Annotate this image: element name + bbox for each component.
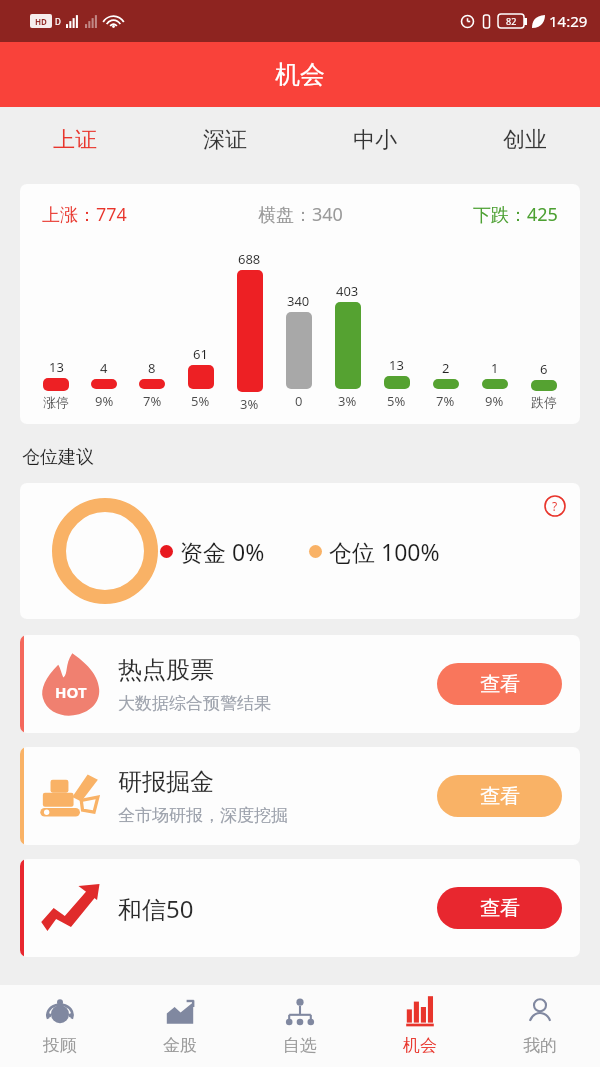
staticText: D [55,16,61,27]
staticText: 查看 [480,896,520,921]
staticText: 3% [240,395,259,410]
staticText: 全市场研报，深度挖掘 [118,805,288,826]
staticText: 13 [49,358,64,376]
staticText: 4 [100,359,108,377]
button[interactable]: 金股 [120,985,240,1067]
staticText: 61 [193,345,208,363]
button[interactable]: 中小 [300,107,450,172]
staticText: 横盘：340 [258,202,343,227]
button[interactable]: 和信50 [20,859,580,957]
staticText: 403 [336,282,359,300]
button[interactable]: 创业 [450,107,600,172]
staticText: 8 [148,359,156,377]
staticText: 340 [287,292,310,310]
button[interactable]: 查看 [437,663,562,705]
button[interactable]: 资金 0% [20,483,580,619]
staticText: 3% [338,392,357,410]
staticText: 查看 [480,784,520,809]
staticText: 创业 [503,126,547,154]
button[interactable]: Help [544,495,566,517]
staticText: 我的 [523,1035,557,1056]
button[interactable]: 自选 [240,985,360,1067]
staticText: 研报掘金 [118,767,214,797]
staticText: 6 [540,360,548,378]
staticText: 中小 [353,126,397,154]
staticText: 82 [506,15,517,27]
staticText: 14:29 [549,11,588,31]
staticText: 9% [95,392,114,410]
staticText: 深证 [203,126,247,154]
staticText: 和信50 [118,892,194,925]
staticText: 跌停 [531,394,557,410]
button[interactable]: 机会 [360,985,480,1067]
button[interactable]: 深证 [150,107,300,172]
staticText: 上证 [53,126,97,154]
staticText: 1 [491,359,499,377]
staticText: 仓位建议 [22,446,94,469]
staticText: 机会 [275,59,325,90]
staticText: 金股 [163,1035,197,1056]
button[interactable]: HOT [20,635,580,733]
staticText: 13 [389,356,404,374]
staticText: 资金 0% [180,536,265,567]
staticText: 机会 [403,1035,437,1056]
staticText: HD [35,16,47,27]
staticText: 上涨：774 [42,202,127,227]
button[interactable]: 我的 [480,985,600,1067]
staticText: 下跌：425 [473,202,558,227]
staticText: 7% [143,392,162,410]
staticText: 查看 [480,672,520,697]
staticText: 大数据综合预警结果 [118,693,271,714]
button[interactable]: 上涨：774 [20,184,580,424]
staticText: 688 [238,250,261,268]
staticText: 仓位 100% [329,536,440,567]
staticText: 0 [295,392,303,410]
staticText: 7% [436,392,455,410]
staticText: ? [552,498,558,514]
staticText: 2 [442,359,450,377]
button[interactable]: 查看 [437,887,562,929]
button[interactable]: 上证 [0,107,150,172]
staticText: 5% [191,392,210,410]
staticText: 自选 [283,1035,317,1056]
staticText: 热点股票 [118,655,214,685]
button[interactable]: 研报掘金 [20,747,580,845]
staticText: 涨停 [43,394,69,410]
button[interactable]: 查看 [437,775,562,817]
staticText: HOT [55,682,87,702]
staticText: 投顾 [43,1035,77,1056]
staticText: 5% [387,392,406,410]
staticText: 9% [485,392,504,410]
button[interactable]: 投顾 [0,985,120,1067]
